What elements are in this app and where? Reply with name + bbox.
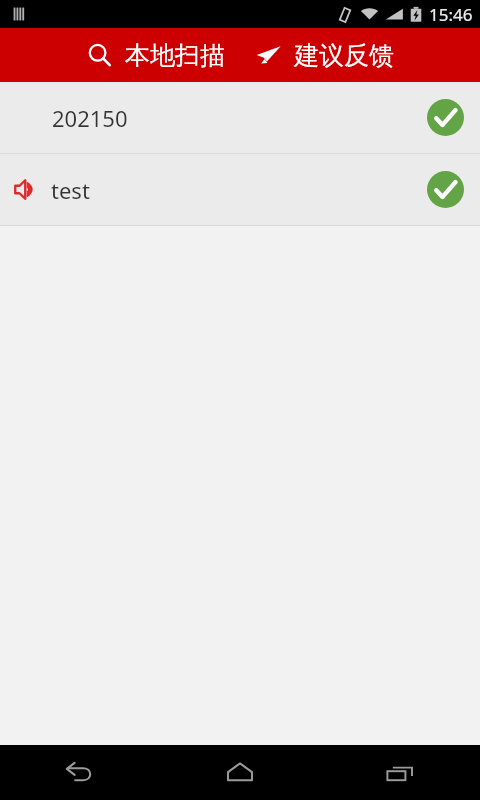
staticText: 15:46 [429,3,473,26]
button[interactable]: test [0,154,480,225]
button[interactable]: Home [160,745,320,800]
staticText: 202150 [52,103,128,133]
button[interactable]: 本地扫描 [78,34,233,77]
button[interactable]: Back [0,745,160,800]
button[interactable]: 202150 [0,82,480,153]
staticText: 本地扫描 [125,40,225,71]
button[interactable]: 建议反馈 [247,34,402,77]
button[interactable]: Recent apps [320,745,480,800]
button[interactable]: Completed [427,171,464,208]
staticText: test [51,175,90,205]
staticText: 建议反馈 [294,40,394,71]
button[interactable]: Completed [427,99,464,136]
